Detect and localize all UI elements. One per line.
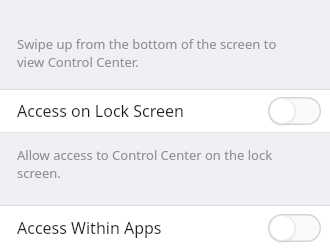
staticText: Access on Lock Screen [17, 100, 184, 122]
button[interactable]: Access Within Apps [0, 205, 330, 250]
staticText: Access Within Apps [17, 217, 162, 239]
other: Access on Lock Screen [268, 97, 321, 125]
staticText: Allow access to Control Center on the lo… [17, 146, 273, 182]
button[interactable]: Access on Lock Screen [0, 89, 330, 133]
staticText: Swipe up from the bottom of the screen t… [17, 35, 277, 71]
other: Access Within Apps [268, 214, 321, 242]
